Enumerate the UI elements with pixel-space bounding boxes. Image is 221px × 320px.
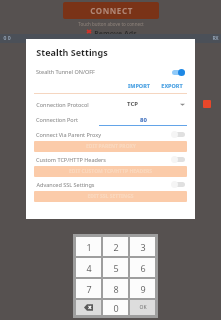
- button[interactable]: Advanced SSL Settings: [26, 178, 195, 190]
- staticText: Advanced SSL Settings: [36, 181, 95, 188]
- staticText: 80: [140, 116, 147, 124]
- button[interactable]: 2: [103, 237, 128, 256]
- staticText: 3: [140, 241, 146, 253]
- staticText: 0 0: [3, 35, 11, 42]
- staticText: Remove Ads: [94, 29, 137, 34]
- button[interactable]: 5: [103, 258, 128, 277]
- button[interactable]: 4: [76, 258, 101, 277]
- button[interactable]: EDIT CUSTOM TCP/HTTP HEADERS: [34, 166, 187, 177]
- button[interactable]: Custom TCP/HTTP Headers: [26, 153, 195, 165]
- button[interactable]: EDIT SSL SETTINGS: [34, 191, 187, 202]
- button[interactable]: CONNECT: [63, 2, 159, 19]
- staticText: EDIT CUSTOM TCP/HTTP HEADERS: [69, 168, 152, 175]
- button[interactable]: OK: [130, 300, 155, 315]
- staticText: EDIT PARENT PROXY: [86, 143, 136, 150]
- staticText: Touch button above to connect: [78, 21, 144, 27]
- button[interactable]: 6: [130, 258, 155, 277]
- button[interactable]: EDIT PARENT PROXY: [34, 141, 187, 152]
- button[interactable]: Connection Protocol: [26, 98, 195, 110]
- staticText: CONNECT: [90, 5, 133, 16]
- staticText: EDIT SSL SETTINGS: [87, 193, 134, 200]
- button[interactable]: Alert: [203, 100, 211, 108]
- staticText: Custom TCP/HTTP Headers: [36, 156, 106, 163]
- staticText: IMPORT: [128, 82, 150, 89]
- button[interactable]: 3: [130, 237, 155, 256]
- staticText: Connection Protocol: [36, 101, 89, 108]
- staticText: OK: [139, 304, 147, 311]
- button[interactable]: Connection Port: [26, 113, 195, 126]
- staticText: 6: [140, 262, 146, 274]
- staticText: 8: [113, 283, 119, 295]
- button[interactable]: Connect Via Parent Proxy: [26, 128, 195, 140]
- staticText: TCP: [127, 100, 138, 108]
- staticText: Stealth Tunnel ON/OFF: [36, 68, 95, 75]
- staticText: 1: [86, 241, 92, 253]
- staticText: Connection Port: [36, 116, 78, 123]
- staticText: Connect Via Parent Proxy: [36, 131, 101, 138]
- button[interactable]: 7: [76, 279, 101, 298]
- staticText: 0: [113, 302, 119, 314]
- staticText: 9: [140, 283, 146, 295]
- staticText: 4: [86, 262, 92, 274]
- staticText: 7: [86, 283, 92, 295]
- button[interactable]: 0: [103, 300, 128, 315]
- button[interactable]: 8: [103, 279, 128, 298]
- button[interactable]: 1: [76, 237, 101, 256]
- button[interactable]: 9: [130, 279, 155, 298]
- button[interactable]: EXPORT: [159, 81, 185, 90]
- button[interactable]: IMPORT: [126, 81, 152, 90]
- staticText: RX: [212, 35, 219, 42]
- staticText: EXPORT: [161, 82, 183, 89]
- staticText: 2: [113, 241, 119, 253]
- button[interactable]: Delete: [76, 300, 101, 315]
- button[interactable]: Stealth Tunnel ON/OFF: [26, 65, 195, 78]
- staticText: 5: [113, 262, 119, 274]
- staticText: Stealth Settings: [36, 46, 108, 58]
